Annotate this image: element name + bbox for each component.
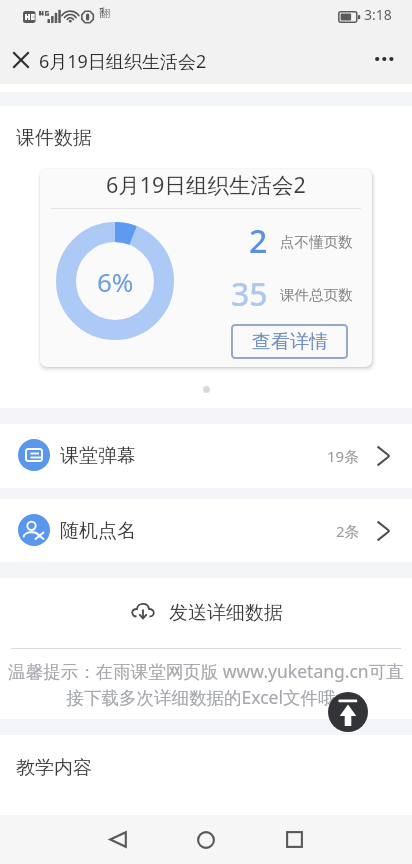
button[interactable]: 随机点名 — [0, 499, 412, 562]
button[interactable]: Scroll to top — [328, 692, 368, 732]
button[interactable]: Back — [94, 815, 142, 864]
button[interactable]: 课堂弹幕 — [0, 424, 412, 488]
staticText: 教学内容 — [16, 756, 92, 780]
staticText: 翻 — [99, 6, 110, 20]
button[interactable]: More options — [364, 37, 408, 81]
staticText: 温馨提示：在雨课堂网页版 www.yuketang.cn可直 接下载多次详细数据… — [0, 659, 412, 709]
staticText: 19条 — [327, 446, 360, 466]
staticText: 2条 — [336, 521, 360, 541]
staticText: 随机点名 — [60, 519, 136, 543]
staticText: 35 — [231, 272, 268, 306]
staticText: 6% — [97, 264, 134, 299]
button[interactable]: Close — [2, 41, 39, 78]
staticText: 3:18 — [364, 5, 392, 24]
staticText: 6月19日组织生活会2 — [106, 170, 306, 199]
staticText: 6月19日组织生活会2 — [39, 49, 207, 74]
staticText: 点不懂页数 — [280, 233, 353, 251]
staticText: 课件总页数 — [280, 286, 353, 304]
button[interactable]: Home — [182, 815, 230, 864]
staticText: 课堂弹幕 — [60, 444, 136, 468]
staticText: 发送详细数据 — [169, 601, 283, 625]
button[interactable]: 查看详情 — [231, 324, 348, 359]
button[interactable]: Recents — [270, 815, 318, 864]
button[interactable]: 发送详细数据 — [0, 578, 412, 648]
staticText: 查看详情 — [252, 330, 328, 354]
staticText: 课件数据 — [16, 126, 92, 150]
staticText: 2 — [249, 219, 268, 253]
